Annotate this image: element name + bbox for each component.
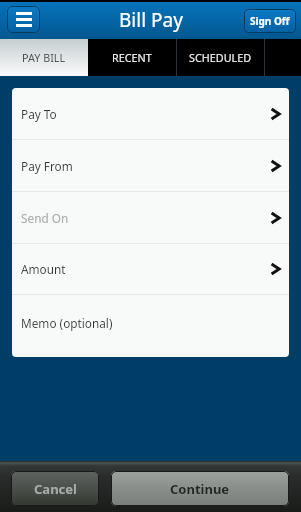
- button[interactable]: Sign Off: [244, 9, 296, 33]
- staticText: Pay From: [21, 158, 73, 174]
- button[interactable]: RECENT: [88, 39, 176, 76]
- button[interactable]: Memo (optional): [12, 295, 289, 357]
- button[interactable]: Menu: [7, 6, 40, 33]
- staticText: Continue: [170, 480, 230, 498]
- button[interactable]: Pay To: [12, 88, 289, 139]
- staticText: PAY BILL: [22, 50, 66, 65]
- button[interactable]: Pay From: [12, 140, 289, 191]
- button[interactable]: Continue: [111, 471, 289, 506]
- staticText: Memo (optional): [21, 315, 113, 331]
- button[interactable]: SCHEDULED: [177, 39, 264, 76]
- staticText: Sign Off: [250, 14, 290, 28]
- staticText: Amount: [21, 261, 66, 277]
- button[interactable]: PAY BILL: [0, 39, 88, 76]
- staticText: SCHEDULED: [189, 50, 252, 65]
- staticText: Send On: [21, 210, 69, 226]
- button[interactable]: Cancel: [11, 471, 99, 506]
- staticText: Bill Pay: [119, 7, 183, 33]
- button[interactable]: Send On: [12, 192, 289, 243]
- staticText: Cancel: [34, 480, 77, 498]
- staticText: Pay To: [21, 106, 57, 122]
- staticText: RECENT: [112, 50, 152, 65]
- button[interactable]: Amount: [12, 244, 289, 294]
